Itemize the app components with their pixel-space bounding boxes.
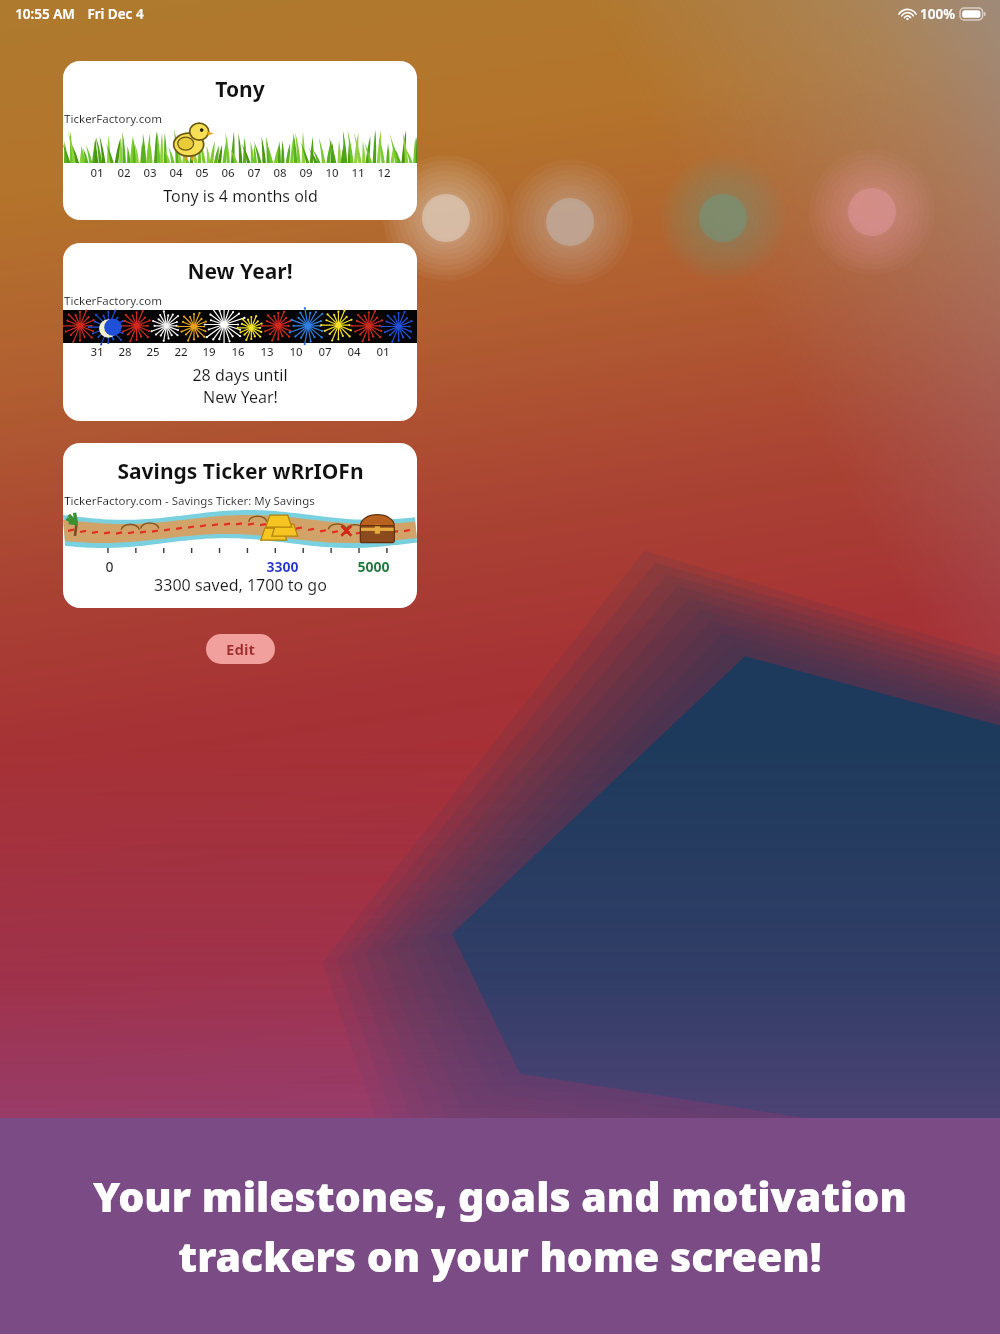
- staticText: 09: [299, 165, 313, 181]
- staticText: 08: [273, 165, 287, 181]
- staticText: Your milestones, goals and motivation: [93, 1168, 907, 1224]
- staticText: Savings Ticker wRrIOFn: [117, 457, 364, 486]
- staticText: Tony is 4 months old: [163, 185, 318, 207]
- staticText: 28 days until: [192, 364, 288, 386]
- staticText: 02: [117, 165, 131, 181]
- staticText: 10:55 AM: [15, 5, 75, 23]
- staticText: 28: [118, 344, 132, 360]
- staticText: 12: [377, 165, 391, 181]
- staticText: 03: [143, 165, 157, 181]
- staticText: 04: [169, 165, 183, 181]
- staticText: 3300: [266, 557, 299, 574]
- button[interactable]: Edit: [206, 634, 275, 664]
- staticText: trackers on your home screen!: [178, 1228, 822, 1284]
- staticText: TickerFactory.com: [64, 111, 162, 127]
- staticText: 07: [318, 344, 332, 360]
- staticText: 11: [351, 165, 365, 181]
- staticText: 10: [325, 165, 339, 181]
- staticText: New Year!: [203, 386, 278, 408]
- staticText: New Year!: [187, 257, 293, 286]
- staticText: 01: [376, 344, 390, 360]
- staticText: 06: [221, 165, 235, 181]
- other: Battery full: [960, 8, 986, 20]
- staticText: 3300 saved, 1700 to go: [154, 574, 327, 596]
- other: Wi-Fi: [900, 9, 915, 20]
- staticText: 10: [289, 344, 303, 360]
- button[interactable]: New Year!: [63, 243, 417, 421]
- staticText: 100%: [920, 5, 955, 23]
- staticText: 5000: [357, 557, 390, 574]
- staticText: 13: [260, 344, 274, 360]
- staticText: 31: [90, 344, 104, 360]
- staticText: TickerFactory.com - Savings Ticker: My S…: [64, 493, 315, 509]
- staticText: 25: [146, 344, 160, 360]
- staticText: 19: [202, 344, 216, 360]
- staticText: 01: [90, 165, 104, 181]
- staticText: 05: [195, 165, 209, 181]
- staticText: 0: [105, 557, 114, 574]
- staticText: 22: [174, 344, 188, 360]
- staticText: 07: [247, 165, 261, 181]
- button[interactable]: Savings Ticker wRrIOFn: [63, 443, 417, 608]
- staticText: 16: [231, 344, 245, 360]
- staticText: Fri Dec 4: [87, 5, 144, 23]
- button[interactable]: Tony: [63, 61, 417, 220]
- staticText: TickerFactory.com: [64, 293, 162, 309]
- staticText: Tony: [215, 75, 265, 104]
- staticText: 04: [347, 344, 361, 360]
- staticText: Edit: [226, 639, 255, 659]
